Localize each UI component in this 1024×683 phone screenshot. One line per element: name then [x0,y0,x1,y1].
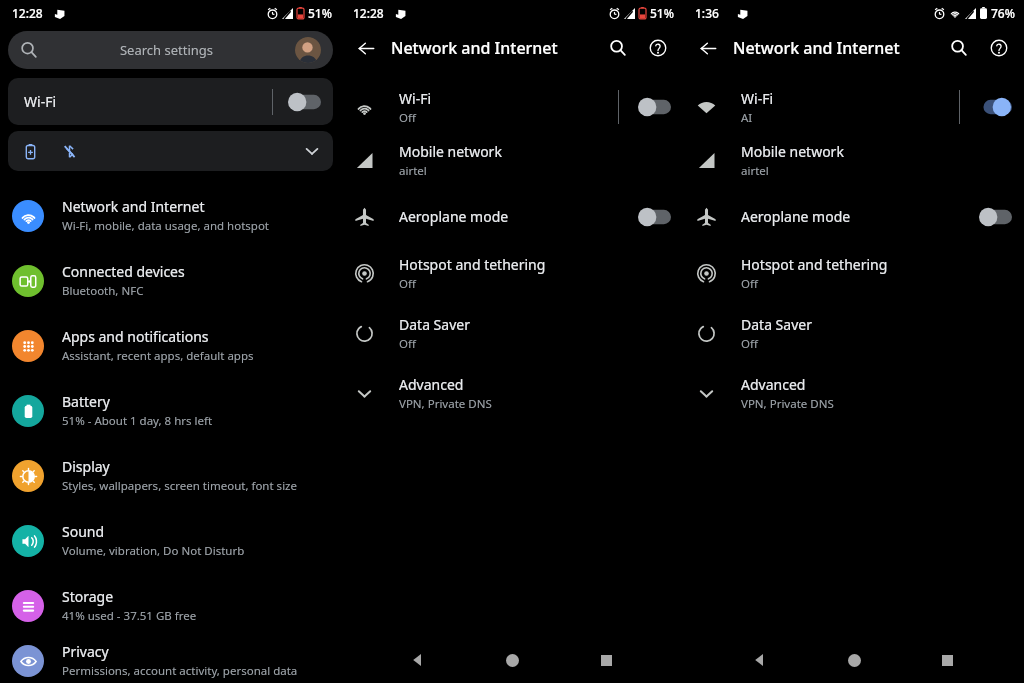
staticText: Network and Internet [62,197,205,216]
button[interactable]: Back [743,643,777,677]
button[interactable]: Help [645,35,671,61]
button[interactable]: Data Saver [683,301,1024,365]
staticText: Data Saver [399,315,470,334]
staticText: Network and Internet [733,37,946,59]
button[interactable]: Turn on [637,97,671,117]
staticText: Wi-Fi [24,92,272,111]
staticText: airtel [741,163,769,179]
staticText: VPN, Private DNS [741,396,834,412]
staticText: Off [399,336,416,352]
staticText: Connected devices [62,262,185,281]
staticText: 41% used - 37.51 GB free [62,608,197,624]
staticText: Off [741,336,758,352]
button[interactable]: Sound [0,508,341,573]
staticText: Bluetooth, NFC [62,283,144,299]
staticText: Wi-Fi, mobile, data usage, and hotspot [62,218,269,234]
staticText: Assistant, recent apps, default apps [62,348,254,364]
button[interactable]: Search [946,35,972,61]
staticText: Mobile network [399,142,502,161]
button[interactable]: Apps and notifications [0,313,341,378]
staticText: 51% [308,5,332,21]
staticText: Wi-Fi [399,89,432,108]
button[interactable]: Turn on [287,92,321,112]
staticText: Network and Internet [391,37,605,59]
button[interactable]: Wi-Fi [8,78,333,125]
staticText: Hotspot and tethering [741,255,888,274]
button[interactable]: Wi-Fi [341,81,683,133]
staticText: airtel [399,163,427,179]
staticText: Privacy [62,642,109,661]
button[interactable]: Display [0,443,341,508]
button[interactable]: Back [401,643,435,677]
staticText: Off [399,110,416,126]
staticText: Aeroplane mode [741,207,978,226]
staticText: Data Saver [741,315,812,334]
button[interactable]: Network and Internet [0,183,341,248]
button[interactable]: Connected devices [0,248,341,313]
staticText: Wi-Fi [741,89,774,108]
button[interactable]: Storage [0,573,341,638]
staticText: Permissions, account activity, personal … [62,663,298,679]
button[interactable]: Aeroplane mode [341,188,683,245]
staticText: VPN, Private DNS [399,396,492,412]
staticText: Storage [62,587,114,606]
button[interactable]: Home [495,643,529,677]
button[interactable]: Back [695,35,721,61]
staticText: Styles, wallpapers, screen timeout, font… [62,478,297,494]
button[interactable]: Turn off [978,97,1012,117]
staticText: Mobile network [741,142,844,161]
staticText: Apps and notifications [62,327,209,346]
staticText: Aeroplane mode [399,207,637,226]
staticText: Sound [62,522,105,541]
staticText: Battery [62,392,110,411]
button[interactable]: Home [837,643,871,677]
button[interactable]: Privacy [0,638,341,683]
button[interactable]: Help [986,35,1012,61]
staticText: Hotspot and tethering [399,255,546,274]
button[interactable]: Battery [0,378,341,443]
staticText: AI [741,110,753,126]
button[interactable]: Turn on [978,207,1012,227]
button[interactable]: Hotspot and tethering [683,245,1024,301]
button[interactable]: Recent apps [589,643,623,677]
button[interactable]: Wi-Fi [683,81,1024,133]
staticText: 1:36 [695,5,719,21]
staticText: 12:28 [12,5,43,21]
button[interactable]: Mobile network [341,133,683,188]
staticText: 76% [991,5,1015,21]
button[interactable]: Back [353,35,379,61]
button[interactable] [8,131,333,171]
staticText: 12:28 [353,5,384,21]
button[interactable]: Search settings [8,31,333,69]
button[interactable]: Mobile network [683,133,1024,188]
button[interactable]: Aeroplane mode [683,188,1024,245]
button[interactable]: Data Saver [341,301,683,365]
button[interactable]: Hotspot and tethering [341,245,683,301]
button[interactable]: Recent apps [930,643,964,677]
staticText: Volume, vibration, Do Not Disturb [62,543,245,559]
staticText: Off [399,276,416,292]
staticText: Display [62,457,110,476]
button[interactable]: Turn on [637,207,671,227]
staticText: Advanced [741,375,806,394]
staticText: Off [741,276,758,292]
staticText: 51% [650,5,674,21]
button[interactable]: Advanced [683,365,1024,421]
staticText: 51% - About 1 day, 8 hrs left [62,413,213,429]
staticText: Advanced [399,375,464,394]
button[interactable]: Account [295,37,321,63]
staticText: Search settings [38,41,295,59]
button[interactable]: Search [605,35,631,61]
button[interactable]: Advanced [341,365,683,421]
